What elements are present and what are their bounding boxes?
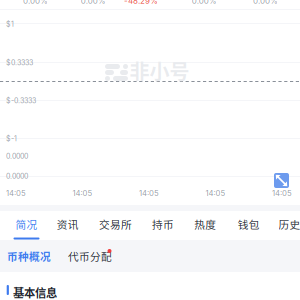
staticText: 基本信息 (13, 284, 57, 300)
button[interactable]: 历史 (274, 211, 300, 240)
button[interactable]: 代币分配 (68, 240, 112, 272)
staticText: 0.00% (23, 0, 48, 6)
staticText: 非小号 (129, 56, 189, 85)
staticText: 交易所 (99, 216, 132, 232)
staticText: $1 (6, 20, 14, 28)
staticText: 14:05 (272, 188, 292, 198)
staticText: -48.29% (124, 0, 158, 6)
staticText: 0.0000 (6, 152, 28, 160)
staticText: 0.00% (253, 0, 278, 6)
staticText: $-0.3333 (6, 96, 36, 105)
staticText: 0.0000 (6, 172, 28, 180)
button[interactable]: 持币 (148, 211, 178, 240)
staticText: 资讯 (57, 216, 79, 232)
staticText: $0.3333 (6, 58, 33, 67)
staticText: 热度 (194, 216, 216, 232)
staticText: 0.00% (81, 0, 106, 6)
button[interactable]: 钱包 (234, 211, 264, 240)
button[interactable]: 简况 (11, 211, 41, 240)
staticText: 0.00% (192, 0, 217, 6)
button[interactable]: 币种概况 (7, 240, 51, 272)
button[interactable]: Fullscreen chart (274, 173, 289, 188)
staticText: 钱包 (238, 216, 260, 232)
staticText: 14:05 (205, 188, 225, 198)
staticText: 14:05 (72, 188, 92, 198)
button[interactable]: 资讯 (53, 211, 83, 240)
staticText: 简况 (15, 216, 37, 232)
staticText: $-1 (6, 134, 17, 143)
staticText: 币种概况 (7, 248, 51, 264)
button[interactable]: 交易所 (95, 211, 135, 240)
button[interactable]: 热度 (190, 211, 220, 240)
staticText: 代币分配 (68, 248, 112, 264)
staticText: 14:05 (6, 188, 26, 198)
staticText: 14:05 (139, 188, 159, 198)
staticText: 持币 (152, 216, 174, 232)
staticText: 历史 (278, 216, 300, 232)
